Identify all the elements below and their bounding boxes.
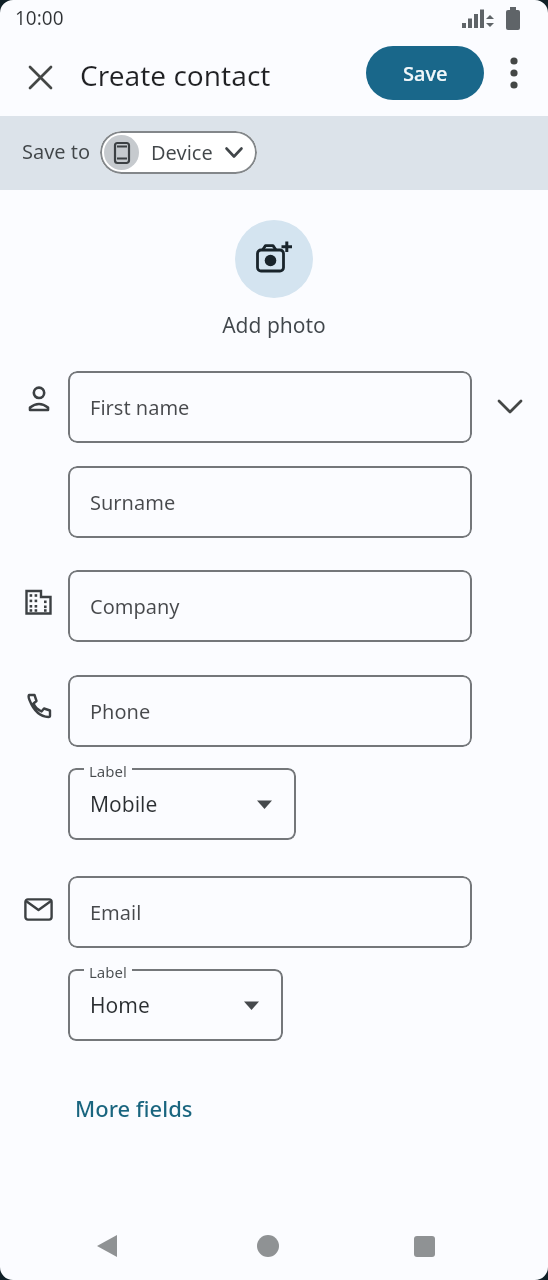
staticText: Home <box>90 991 150 1020</box>
staticText: Device <box>151 139 213 166</box>
staticText: Label <box>89 962 127 982</box>
button[interactable] <box>18 55 62 99</box>
staticText: Company <box>90 593 180 620</box>
button[interactable]: Save <box>366 46 484 100</box>
button[interactable]: Mobile <box>68 768 296 840</box>
button[interactable] <box>402 1224 446 1268</box>
staticText: Save to <box>22 138 91 165</box>
button[interactable] <box>86 1224 130 1268</box>
staticText: Surname <box>90 489 176 516</box>
button[interactable]: Phone <box>68 675 472 747</box>
button[interactable] <box>492 51 536 95</box>
button[interactable]: Company <box>68 570 472 642</box>
button[interactable]: More fields <box>75 1093 193 1123</box>
staticText: Create contact <box>80 56 271 94</box>
button[interactable]: Email <box>68 876 472 948</box>
staticText: Add photo <box>0 311 548 340</box>
staticText: Label <box>89 761 127 781</box>
button[interactable]: First name <box>68 371 472 443</box>
staticText: First name <box>90 394 190 421</box>
staticText: Phone <box>90 698 151 725</box>
button[interactable] <box>235 220 313 298</box>
button[interactable]: Surname <box>68 466 472 538</box>
staticText: Mobile <box>90 790 158 819</box>
staticText: Save <box>403 60 448 87</box>
staticText: 10:00 <box>15 5 64 31</box>
button[interactable] <box>246 1224 290 1268</box>
button[interactable] <box>488 385 532 429</box>
staticText: Email <box>90 899 142 926</box>
button[interactable]: Device <box>100 131 257 174</box>
button[interactable]: Home <box>68 969 283 1041</box>
